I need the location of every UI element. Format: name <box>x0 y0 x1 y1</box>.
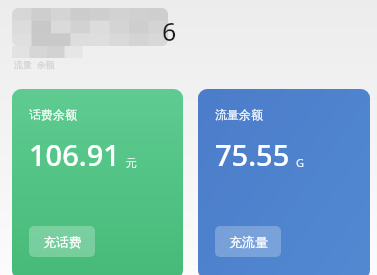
staticText: 75.55 <box>215 135 290 174</box>
button[interactable]: 充话费 <box>29 226 95 257</box>
button[interactable]: 话费余额 <box>12 89 183 275</box>
staticText: G <box>296 155 305 170</box>
button[interactable]: 流量余额 <box>198 89 370 275</box>
staticText: 流量余额 <box>215 107 263 122</box>
staticText: 话费余额 <box>29 107 77 122</box>
staticText: 充话费 <box>43 234 82 250</box>
staticText: 元 <box>126 156 137 170</box>
staticText: 6 <box>162 14 177 48</box>
staticText: 流量 余额 <box>14 58 55 70</box>
staticText: 106.91 <box>29 135 120 174</box>
staticText: 充流量 <box>229 234 268 250</box>
button[interactable]: 充流量 <box>215 226 281 257</box>
